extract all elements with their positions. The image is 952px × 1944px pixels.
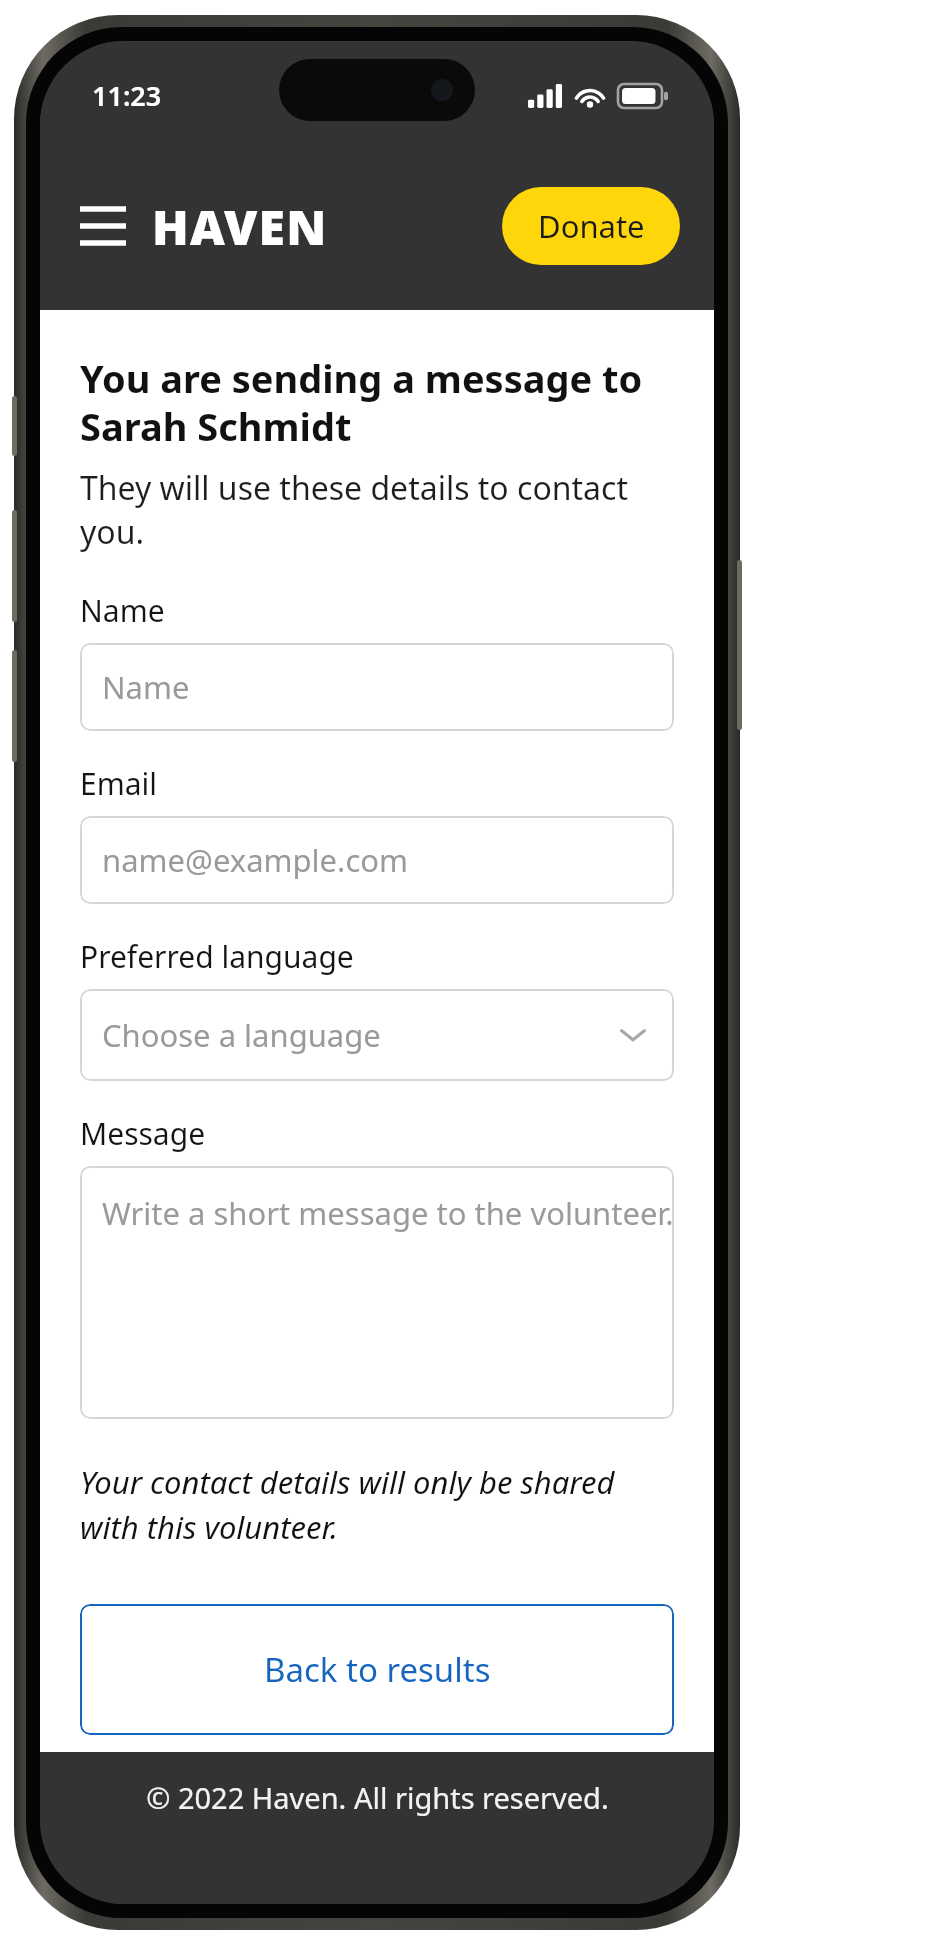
staticText: Write a short message to the volunteer. — [102, 1192, 674, 1234]
staticText: Back to results — [264, 1647, 491, 1692]
staticText: 11:23 — [92, 77, 162, 114]
staticText: © 2022 Haven. All rights reserved. — [146, 1778, 609, 1817]
button[interactable]: Open navigation menu — [74, 197, 132, 255]
staticText: name@example.com — [102, 839, 409, 881]
staticText: Message — [80, 1113, 206, 1154]
staticText: Preferred language — [80, 936, 354, 977]
staticText: You are sending a message to Sarah Schmi… — [80, 352, 643, 452]
staticText: HAVEN — [152, 194, 328, 259]
button[interactable]: Name — [80, 643, 674, 731]
staticText: They will use these details to contact y… — [80, 466, 674, 554]
staticText: Name — [102, 666, 190, 708]
button[interactable]: Back to results — [80, 1604, 674, 1735]
staticText: Email — [80, 763, 158, 804]
button[interactable]: Write a short message to the volunteer. — [80, 1166, 674, 1419]
staticText: Donate — [538, 205, 645, 247]
button[interactable]: Donate — [502, 187, 680, 265]
staticText: Name — [80, 590, 165, 631]
staticText: Choose a language — [102, 1014, 381, 1056]
staticText: Your contact details will only be shared… — [80, 1461, 674, 1548]
button[interactable]: name@example.com — [80, 816, 674, 904]
button[interactable]: Choose a language — [80, 989, 674, 1081]
